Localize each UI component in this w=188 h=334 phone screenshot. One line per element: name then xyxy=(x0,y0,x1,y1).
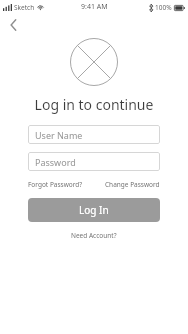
staticText: Sketch xyxy=(14,3,35,12)
button[interactable]: Need Account? xyxy=(0,231,188,240)
staticText: Need Account? xyxy=(71,231,117,240)
staticText: User Name xyxy=(35,129,83,141)
staticText: Log in to continue xyxy=(0,95,188,114)
staticText: Log In xyxy=(79,203,109,217)
staticText: 100% xyxy=(155,3,172,12)
staticText: Password xyxy=(35,156,76,168)
staticText: Change Password xyxy=(105,180,160,189)
button[interactable]: Log In xyxy=(28,198,160,222)
button[interactable]: Change Password xyxy=(105,180,160,189)
staticText: 9:41 AM xyxy=(81,2,108,12)
button[interactable]: Forgot Password? xyxy=(28,180,83,189)
button[interactable]: User Name xyxy=(28,125,160,144)
staticText: Forgot Password? xyxy=(28,180,83,189)
button[interactable]: Password xyxy=(28,152,160,171)
button[interactable]: Back xyxy=(4,16,22,34)
